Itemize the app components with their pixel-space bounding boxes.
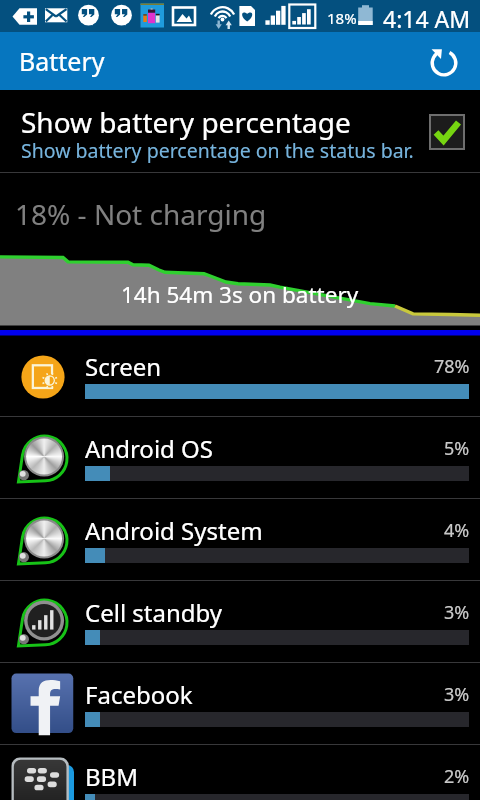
staticText: 5%: [444, 436, 470, 461]
staticText: 3%: [444, 600, 470, 625]
staticText: Android System: [85, 514, 263, 547]
staticText: 18%: [327, 8, 357, 28]
staticText: Show battery percentage: [21, 103, 351, 141]
button[interactable]: Cell standby: [0, 581, 480, 662]
staticText: 2%: [444, 764, 470, 789]
button[interactable]: Show battery percentage: [0, 90, 480, 173]
button[interactable]: BBM: [0, 745, 480, 800]
staticText: Show battery percentage on the status ba…: [21, 137, 414, 164]
staticText: 18% - Not charging: [15, 195, 267, 233]
button[interactable]: Screen: [0, 335, 480, 416]
staticText: 78%: [434, 354, 470, 379]
button[interactable]: Refresh: [423, 42, 464, 83]
staticText: Facebook: [85, 678, 193, 711]
staticText: Cell standby: [85, 596, 223, 629]
staticText: Battery: [19, 44, 105, 78]
button[interactable]: Facebook: [0, 663, 480, 744]
button[interactable]: Android System: [0, 499, 480, 580]
staticText: 4%: [444, 518, 470, 543]
staticText: 3%: [444, 682, 470, 707]
staticText: Android OS: [85, 432, 213, 465]
staticText: 4:14 AM: [383, 3, 471, 34]
button[interactable]: Android OS: [0, 417, 480, 498]
staticText: BBM: [85, 760, 138, 793]
staticText: 14h 54m 3s on battery: [121, 279, 359, 310]
staticText: Screen: [85, 350, 162, 383]
